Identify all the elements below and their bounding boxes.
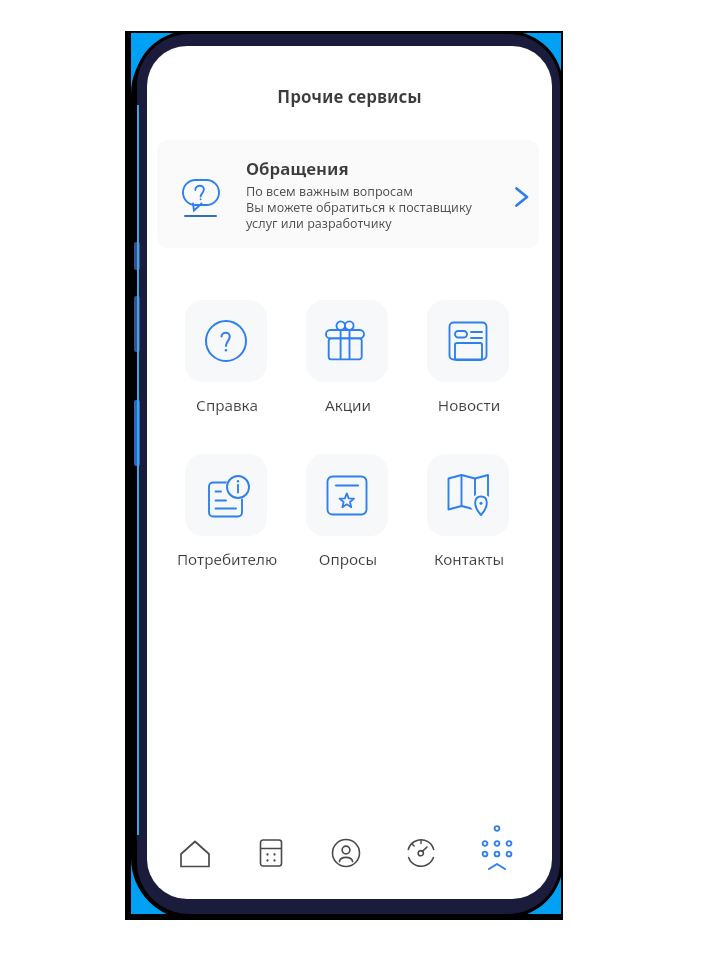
button[interactable]: Калькулятор xyxy=(243,825,299,881)
button[interactable]: Показания xyxy=(393,825,449,881)
button[interactable]: Справка xyxy=(185,300,267,382)
staticText: Акции xyxy=(277,395,419,416)
button[interactable]: Потребителю xyxy=(185,454,267,536)
button[interactable]: Контакты xyxy=(427,454,509,536)
button[interactable]: Акции xyxy=(306,300,388,382)
other: Справка xyxy=(204,319,248,363)
staticText: Справка xyxy=(156,395,298,416)
other: Акции xyxy=(325,319,369,363)
staticText: Прочие сервисы xyxy=(147,85,552,108)
button[interactable]: Главная xyxy=(167,825,223,881)
other: Потребителю xyxy=(204,473,248,517)
other: Открыть обращения xyxy=(514,186,530,208)
button[interactable]: Сервисы xyxy=(469,825,525,881)
button[interactable]: Обращения xyxy=(157,140,539,248)
staticText: Обращения xyxy=(246,157,349,180)
button[interactable]: Опросы xyxy=(306,454,388,536)
staticText: По всем важным вопросам Вы можете обрати… xyxy=(246,183,472,232)
other: Опросы xyxy=(325,473,369,517)
staticText: Опросы xyxy=(277,549,419,570)
button[interactable]: Профиль xyxy=(318,825,374,881)
staticText: Контакты xyxy=(398,549,540,570)
other: Новости xyxy=(446,319,490,363)
staticText: Потребителю xyxy=(156,549,298,570)
staticText: Новости xyxy=(398,395,540,416)
button[interactable]: Новости xyxy=(427,300,509,382)
other: Контакты xyxy=(446,473,490,517)
